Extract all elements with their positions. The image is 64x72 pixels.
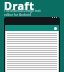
staticText: The Material Design text editor for Andr… (4, 9, 41, 17)
button[interactable]: Account (54, 27, 57, 30)
staticText: Draft (4, 0, 35, 13)
